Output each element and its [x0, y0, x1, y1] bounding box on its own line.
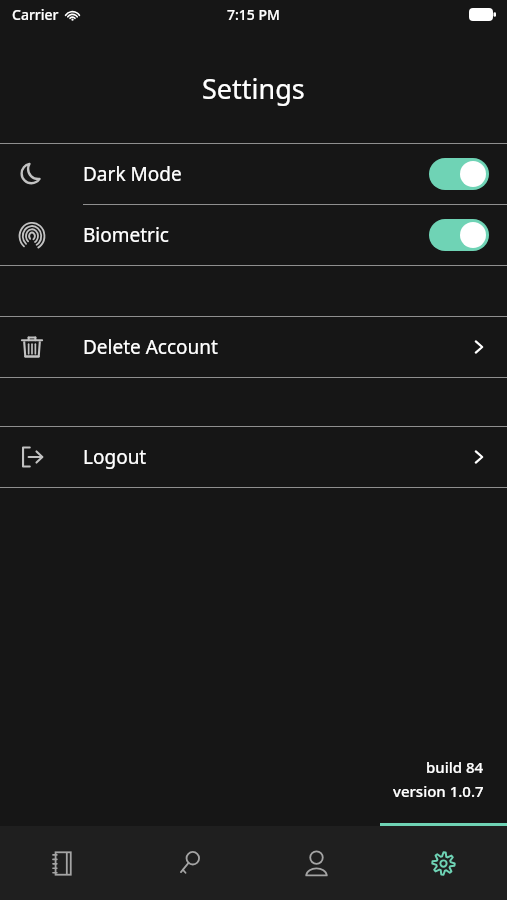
other: Logout	[469, 447, 489, 467]
staticText: 7:15 PM	[227, 5, 280, 24]
button[interactable]: Settings	[380, 826, 507, 900]
staticText: version 1.0.7	[393, 781, 484, 801]
staticText: Delete Account	[83, 334, 218, 360]
staticText: build 84	[426, 757, 484, 777]
staticText: Biometric	[83, 222, 169, 248]
staticText: Settings	[202, 70, 305, 107]
button[interactable]: Biometric	[0, 205, 507, 265]
staticText: Dark Mode	[83, 161, 182, 187]
button[interactable]: Search	[126, 826, 253, 900]
button[interactable]: Notebook	[0, 826, 126, 900]
staticText: Carrier	[12, 5, 59, 24]
button[interactable]	[429, 158, 489, 190]
button[interactable]	[429, 219, 489, 251]
button[interactable]: Dark Mode	[0, 144, 507, 204]
other: Delete Account	[469, 337, 489, 357]
button[interactable]: Logout	[0, 427, 507, 487]
button[interactable]: Profile	[253, 826, 380, 900]
button[interactable]: Delete Account	[0, 317, 507, 377]
staticText: Logout	[83, 444, 147, 470]
